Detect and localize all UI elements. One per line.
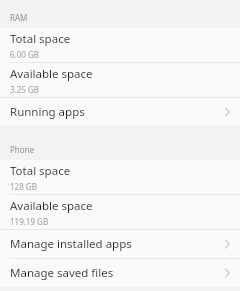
staticText: Running apps: [10, 104, 222, 120]
staticText: 119.19 GB: [10, 216, 49, 227]
button[interactable]: Total space: [0, 160, 240, 194]
other: Running apps: [222, 106, 232, 118]
staticText: Manage saved files: [10, 265, 222, 281]
other: Manage installed apps: [222, 238, 232, 250]
staticText: Total space: [10, 163, 71, 179]
button[interactable]: Manage saved files: [0, 259, 240, 287]
staticText: Available space: [10, 198, 93, 214]
staticText: Available space: [10, 66, 93, 82]
staticText: Manage installed apps: [10, 236, 222, 252]
button[interactable]: Available space: [0, 195, 240, 229]
staticText: 6.00 GB: [10, 49, 39, 60]
button[interactable]: Available space: [0, 63, 240, 97]
staticText: Phone: [10, 144, 35, 155]
staticText: 3.25 GB: [10, 84, 39, 95]
staticText: Total space: [10, 31, 71, 47]
other: Manage saved files: [222, 267, 232, 279]
staticText: RAM: [10, 12, 28, 23]
button[interactable]: Total space: [0, 28, 240, 62]
staticText: 128 GB: [10, 181, 37, 192]
button[interactable]: Manage installed apps: [0, 230, 240, 258]
button[interactable]: Running apps: [0, 98, 240, 126]
